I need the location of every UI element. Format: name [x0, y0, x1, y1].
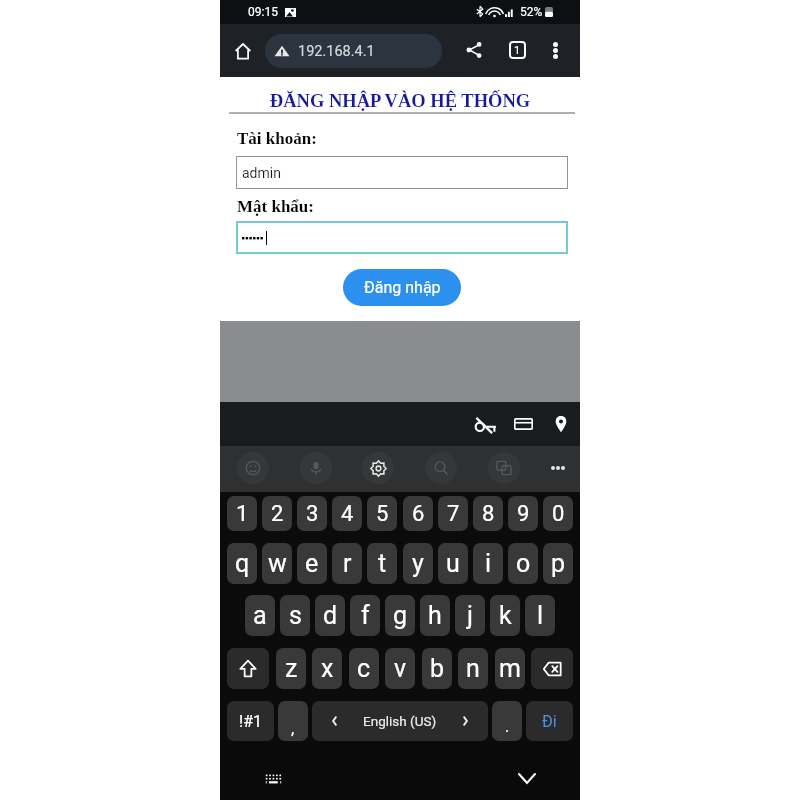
- button[interactable]: a: [245, 595, 275, 636]
- staticText: u: [446, 549, 460, 578]
- staticText: b: [430, 654, 445, 683]
- button[interactable]: g: [385, 595, 415, 636]
- button[interactable]: Đăng nhập: [343, 269, 461, 306]
- button[interactable]: Space, English (US): [312, 701, 488, 741]
- button[interactable]: 3: [297, 496, 327, 531]
- staticText: g: [393, 601, 408, 630]
- button[interactable]: More options: [542, 452, 574, 484]
- button[interactable]: 6: [403, 496, 433, 531]
- button[interactable]: Addresses: [546, 409, 576, 439]
- button[interactable]: s: [280, 595, 310, 636]
- button[interactable]: e: [297, 543, 327, 584]
- button[interactable]: r: [332, 543, 362, 584]
- button[interactable]: admin: [236, 156, 568, 189]
- staticText: j: [467, 601, 473, 630]
- button[interactable]: Keyboard settings: [362, 452, 394, 484]
- button[interactable]: 0: [543, 496, 573, 531]
- staticText: l: [537, 601, 544, 630]
- staticText: 2: [271, 501, 284, 527]
- staticText: p: [551, 549, 566, 578]
- button[interactable]: 8: [473, 496, 503, 531]
- button[interactable]: k: [490, 595, 520, 636]
- staticText: 4: [341, 501, 354, 527]
- staticText: 3: [306, 501, 319, 527]
- button[interactable]: u: [438, 543, 468, 584]
- button[interactable]: l: [525, 595, 555, 636]
- staticText: m: [499, 654, 521, 683]
- staticText: 5: [376, 501, 389, 527]
- button[interactable]: Key: [227, 648, 269, 689]
- button[interactable]: Emoji: [237, 452, 269, 484]
- staticText: a: [253, 601, 267, 630]
- button[interactable]: o: [508, 543, 538, 584]
- button[interactable]: Key: [531, 648, 573, 689]
- button[interactable]: [236, 221, 568, 254]
- button[interactable]: x: [312, 648, 342, 689]
- button[interactable]: f: [350, 595, 380, 636]
- button[interactable]: Change keyboard: [258, 764, 288, 794]
- staticText: y: [412, 549, 424, 578]
- button[interactable]: 7: [438, 496, 468, 531]
- staticText: 6: [412, 501, 425, 527]
- staticText: Mật khẩu:: [237, 197, 314, 216]
- button[interactable]: c: [349, 648, 379, 689]
- button[interactable]: Tabs: [503, 36, 531, 64]
- button[interactable]: 4: [332, 496, 362, 531]
- staticText: q: [235, 549, 250, 578]
- button[interactable]: 9: [508, 496, 538, 531]
- button[interactable]: 1: [227, 496, 257, 531]
- staticText: admin: [242, 165, 281, 181]
- staticText: z: [285, 654, 298, 683]
- button[interactable]: Search: [425, 452, 457, 484]
- staticText: !#1: [239, 712, 262, 731]
- staticText: v: [394, 654, 407, 683]
- staticText: 09:15: [248, 5, 278, 19]
- button[interactable]: b: [422, 648, 452, 689]
- staticText: Tài khoản:: [237, 129, 317, 148]
- button[interactable]: More options: [541, 36, 569, 64]
- staticText: f: [361, 601, 370, 630]
- button[interactable]: d: [315, 595, 345, 636]
- button[interactable]: w: [262, 543, 292, 584]
- staticText: k: [499, 601, 512, 630]
- staticText: .: [505, 717, 510, 736]
- button[interactable]: q: [227, 543, 257, 584]
- staticText: n: [466, 654, 480, 683]
- button[interactable]: Payment methods: [508, 409, 538, 439]
- button[interactable]: Share: [460, 36, 488, 64]
- button[interactable]: j: [455, 595, 485, 636]
- button[interactable]: z: [276, 648, 306, 689]
- staticText: h: [428, 601, 442, 630]
- staticText: 192.168.4.1: [298, 43, 375, 60]
- button[interactable]: 5: [367, 496, 397, 531]
- button[interactable]: p: [543, 543, 573, 584]
- button[interactable]: ,: [278, 701, 308, 741]
- staticText: 1: [514, 44, 521, 57]
- staticText: e: [305, 549, 319, 578]
- button[interactable]: Home: [228, 37, 257, 66]
- button[interactable]: i: [473, 543, 503, 584]
- button[interactable]: Đi: [526, 701, 573, 741]
- button[interactable]: 2: [262, 496, 292, 531]
- button[interactable]: Voice input: [300, 452, 332, 484]
- staticText: Đi: [542, 712, 557, 731]
- staticText: i: [485, 549, 492, 578]
- staticText: ,: [291, 719, 295, 738]
- button[interactable]: !#1: [227, 701, 274, 741]
- staticText: 52%: [520, 5, 543, 19]
- button[interactable]: n: [458, 648, 488, 689]
- button[interactable]: .: [492, 701, 522, 741]
- staticText: ĐĂNG NHẬP VÀO HỆ THỐNG: [220, 91, 580, 111]
- staticText: 8: [482, 501, 495, 527]
- button[interactable]: Hide keyboard: [512, 763, 542, 793]
- button[interactable]: y: [403, 543, 433, 584]
- button[interactable]: h: [420, 595, 450, 636]
- button[interactable]: t: [367, 543, 397, 584]
- staticText: d: [323, 601, 338, 630]
- button[interactable]: Passwords: [471, 409, 501, 439]
- button[interactable]: Translate: [488, 452, 520, 484]
- button[interactable]: v: [385, 648, 415, 689]
- button[interactable]: m: [495, 648, 525, 689]
- staticText: c: [357, 654, 371, 683]
- button[interactable]: 192.168.4.1: [265, 34, 442, 68]
